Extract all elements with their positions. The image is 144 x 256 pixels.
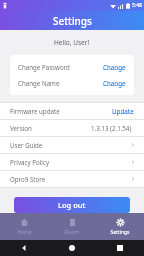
- staticText: Privacy Policy: [10, 158, 130, 166]
- button[interactable]: Log out: [14, 197, 130, 213]
- staticText: Home: [17, 229, 32, 236]
- staticText: Change Password: [18, 63, 103, 71]
- staticText: Change: [103, 63, 126, 71]
- button[interactable]: Change Password: [10, 59, 134, 75]
- staticText: Settings: [110, 229, 130, 236]
- staticText: Room: [65, 229, 79, 236]
- staticText: Change Name: [18, 79, 103, 87]
- button[interactable]: Privacy Policy: [0, 154, 144, 170]
- button[interactable]: Home: [48, 240, 96, 256]
- staticText: 1.3.13 (2.1.54): [91, 124, 132, 132]
- staticText: Firmware update: [10, 107, 112, 115]
- button[interactable]: Recent apps: [96, 240, 144, 256]
- button[interactable]: Change Name: [10, 75, 134, 91]
- staticText: Update: [112, 107, 134, 115]
- staticText: Version: [10, 124, 91, 132]
- button[interactable]: Home: [0, 213, 48, 240]
- button[interactable]: Room: [48, 213, 96, 240]
- staticText: 5:48: [132, 2, 142, 9]
- staticText: Settings: [53, 14, 92, 28]
- button[interactable]: Back: [0, 240, 48, 256]
- staticText: Log out: [58, 200, 86, 210]
- staticText: User Guide: [10, 141, 130, 149]
- staticText: Change: [103, 79, 126, 87]
- button[interactable]: Firmware update: [0, 103, 144, 119]
- staticText: Hello, User!: [54, 38, 90, 47]
- staticText: Opro9 Store: [10, 175, 130, 183]
- button[interactable]: Opro9 Store: [0, 171, 144, 187]
- button[interactable]: User Guide: [0, 137, 144, 153]
- button[interactable]: Settings: [96, 213, 144, 240]
